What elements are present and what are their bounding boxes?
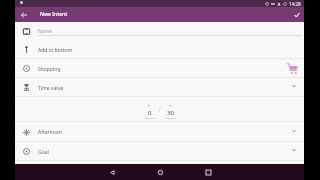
staticText: Afternoon [38, 129, 62, 136]
staticText: h [148, 103, 151, 108]
staticText: Add to bottom [38, 47, 73, 54]
button[interactable]: Recents [200, 164, 216, 180]
button[interactable]: Add to bottom [15, 40, 304, 59]
staticText: Shopping [38, 66, 61, 73]
button[interactable]: Back [104, 164, 120, 180]
staticText: 30 [167, 109, 174, 117]
staticText: Name [38, 28, 53, 35]
button[interactable]: Back [17, 8, 30, 21]
button[interactable]: Shopping [15, 59, 304, 78]
button[interactable]: Afternoon [15, 122, 304, 142]
staticText: Time value [38, 85, 64, 92]
staticText: 0 [148, 109, 152, 117]
button[interactable]: Name [15, 22, 304, 40]
staticText: Goal [38, 149, 49, 156]
button[interactable]: Goal [15, 142, 304, 161]
staticText: New Intent [40, 11, 68, 18]
staticText: m [169, 103, 173, 108]
button[interactable]: Time value [15, 78, 304, 97]
button[interactable]: Save [289, 8, 302, 21]
staticText: : [159, 107, 161, 114]
staticText: 14:28 [289, 1, 301, 7]
button[interactable]: Home [152, 164, 168, 180]
